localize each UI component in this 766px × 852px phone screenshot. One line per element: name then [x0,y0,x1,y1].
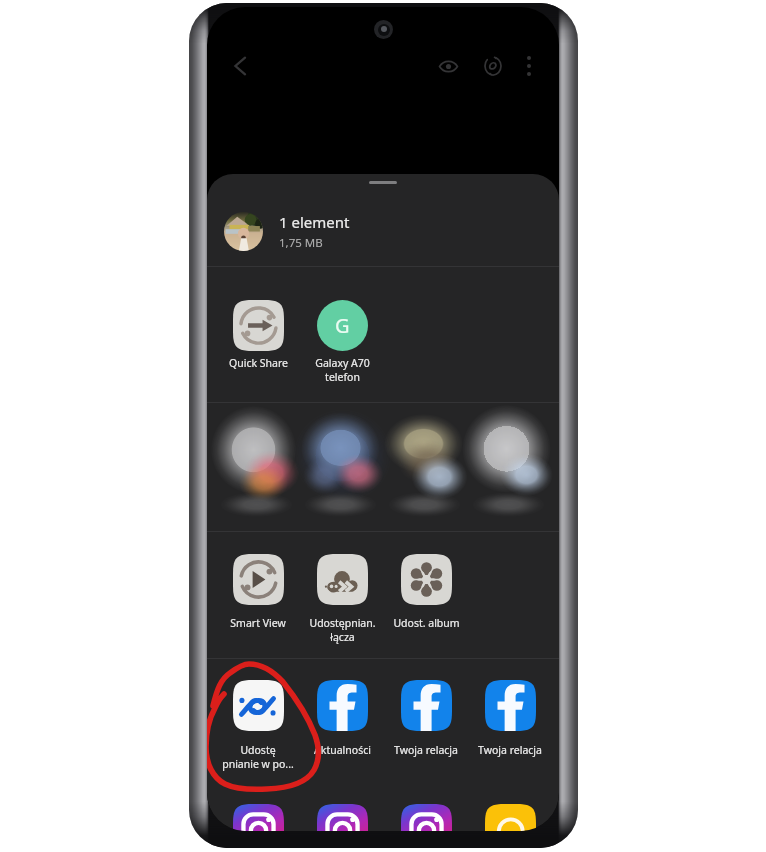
staticText: Udostę pnianie w po... [222,743,294,771]
button[interactable]: 1 element [207,198,559,264]
button[interactable]: Aktualności [300,680,384,757]
button[interactable]: Udostępnian. łącza [300,554,384,644]
button[interactable]: Instagram [300,804,384,831]
staticText: Twoja relacja [394,743,458,757]
button[interactable]: More options [507,44,551,88]
button[interactable]: Instagram [216,804,300,831]
button[interactable]: Twoja relacja [384,680,468,757]
button[interactable]: Twoja relacja [468,680,552,757]
button[interactable]: Smart View [216,554,300,630]
staticText: 1,75 MB [279,235,323,251]
staticText: Aktualności [314,743,371,757]
button[interactable]: G [300,300,384,384]
button[interactable]: Rotate [471,44,515,88]
staticText: Udostępnian. łącza [309,616,376,644]
button[interactable]: Udostę pnianie w po... [216,680,300,771]
button[interactable]: Instagram [384,804,468,831]
button[interactable]: Quick Share [216,300,300,370]
staticText: Udost. album [393,616,460,630]
button[interactable]: Preview [426,44,470,88]
button[interactable]: Snapchat [468,804,552,831]
staticText: Galaxy A70 telefon [315,356,370,384]
staticText: 1 element [279,212,350,232]
button[interactable]: Back [218,44,262,88]
staticText: Quick Share [229,356,288,370]
staticText: Smart View [230,616,286,630]
staticText: Twoja relacja [478,743,542,757]
button[interactable]: Udost. album [384,554,468,630]
staticText: G [335,312,350,339]
